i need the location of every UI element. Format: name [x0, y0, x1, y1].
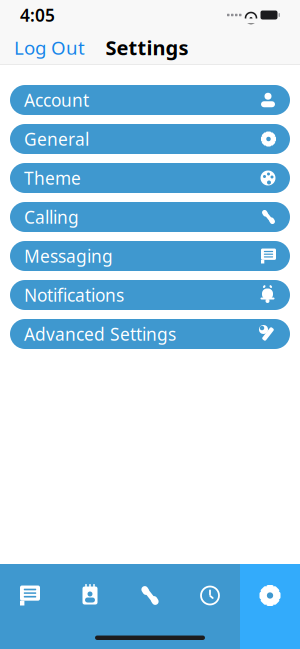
button[interactable]: General [10, 124, 290, 154]
staticText: Calling [24, 205, 79, 228]
button[interactable]: Messaging [10, 241, 290, 271]
staticText: General [24, 127, 89, 150]
button[interactable]: Settings [240, 564, 300, 649]
staticText: Log Out [14, 35, 85, 60]
staticText: Advanced Settings [24, 322, 176, 345]
button[interactable]: Notifications [10, 280, 290, 310]
button[interactable]: Contacts [60, 564, 120, 649]
button[interactable]: Account [10, 85, 290, 115]
button[interactable]: Recents [180, 564, 240, 649]
staticText: 4:05 [20, 3, 55, 26]
staticText: Theme [24, 166, 81, 189]
button[interactable]: Theme [10, 163, 290, 193]
button[interactable]: Messages [0, 564, 60, 649]
staticText: Settings [105, 34, 188, 61]
staticText: Account [24, 88, 89, 111]
staticText: Messaging [24, 244, 113, 267]
button[interactable]: Log Out [0, 28, 99, 67]
button[interactable]: Advanced Settings [10, 319, 290, 349]
button[interactable]: Calls [120, 564, 180, 649]
button[interactable]: Calling [10, 202, 290, 232]
staticText: Notifications [24, 283, 124, 306]
